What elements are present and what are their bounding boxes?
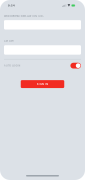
button[interactable]: SIGN IN (21, 80, 64, 88)
button[interactable]: Auto login (70, 63, 81, 68)
staticText: 9:54 (8, 4, 15, 7)
button[interactable]: AUTO LOGIN (4, 63, 81, 68)
staticText: SIGN IN (37, 83, 48, 86)
staticText: AUTO LOGIN (4, 64, 20, 67)
staticText: API KEY (4, 40, 14, 43)
button[interactable] (4, 45, 81, 55)
staticText: WORDPRESS INSTALLATION URL (4, 15, 43, 17)
button[interactable] (4, 20, 81, 29)
